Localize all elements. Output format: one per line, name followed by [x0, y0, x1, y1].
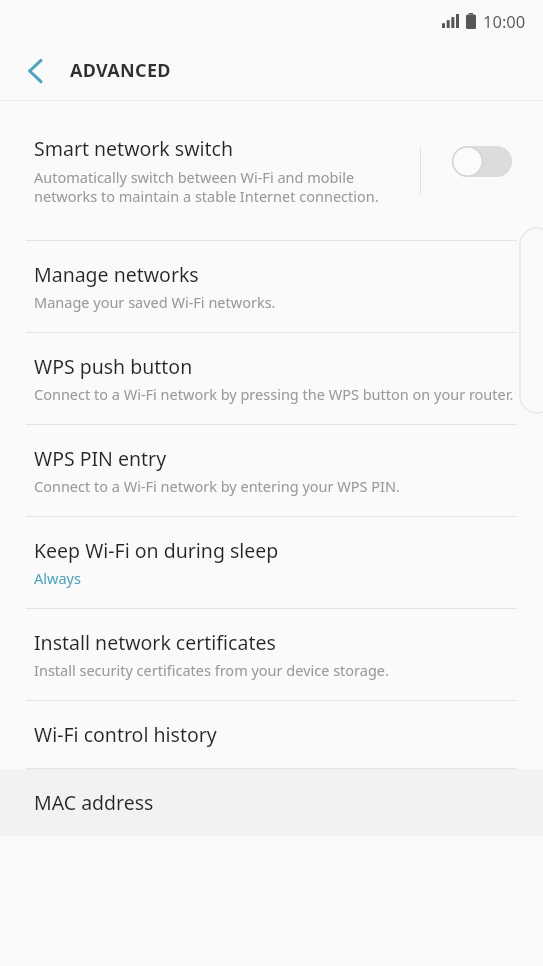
staticText: Install security certificates from your …: [34, 660, 389, 680]
staticText: Install network certificates: [34, 629, 276, 656]
staticText: WPS push button: [34, 353, 193, 380]
staticText: 10:00: [483, 10, 526, 32]
button[interactable]: Smart network switch: [0, 101, 543, 240]
button[interactable]: Manage networks: [0, 241, 543, 332]
staticText: Wi-Fi control history: [34, 721, 217, 748]
staticText: Always: [34, 568, 81, 588]
button[interactable]: WPS push button: [0, 333, 543, 424]
button[interactable]: Smart network switch toggle: [421, 101, 543, 240]
staticText: Manage your saved Wi-Fi networks.: [34, 292, 276, 312]
staticText: Connect to a Wi-Fi network by entering y…: [34, 476, 400, 496]
staticText: ADVANCED: [70, 58, 171, 83]
staticText: Keep Wi-Fi on during sleep: [34, 537, 279, 564]
button[interactable]: MAC address: [0, 769, 543, 836]
staticText: MAC address: [34, 789, 154, 816]
staticText: Manage networks: [34, 261, 199, 288]
button[interactable]: Keep Wi-Fi on during sleep: [0, 517, 543, 608]
button[interactable]: Back: [0, 41, 70, 100]
staticText: Smart network switch: [34, 135, 233, 162]
staticText: Connect to a Wi-Fi network by pressing t…: [34, 384, 514, 404]
staticText: Automatically switch between Wi-Fi and m…: [34, 167, 408, 207]
button[interactable]: Install network certificates: [0, 609, 543, 700]
button[interactable]: WPS PIN entry: [0, 425, 543, 516]
staticText: WPS PIN entry: [34, 445, 167, 472]
button[interactable]: Wi-Fi control history: [0, 701, 543, 768]
